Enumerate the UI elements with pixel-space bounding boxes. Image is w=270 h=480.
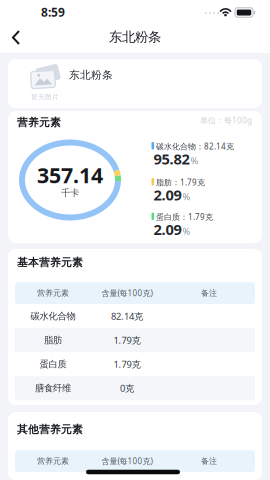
staticText: 备注 xyxy=(201,288,217,298)
staticText: % xyxy=(182,225,190,237)
staticText: 脂肪：1.79克 xyxy=(156,177,205,188)
staticText: 暂无图片 xyxy=(31,93,59,101)
staticText: 蛋白质：1.79克 xyxy=(156,211,213,222)
staticText: 营养元素 xyxy=(37,456,69,466)
staticText: 备注 xyxy=(201,456,217,466)
staticText: 营养元素 xyxy=(17,116,61,129)
staticText: 2.09 xyxy=(153,185,181,204)
staticText: 8:59 xyxy=(41,4,65,20)
staticText: 东北粉条 xyxy=(109,29,161,45)
staticText: 营养元素 xyxy=(37,288,69,298)
staticText: 碳水化合物：82.14克 xyxy=(156,141,234,152)
staticText: 单位：每100g xyxy=(200,115,252,126)
staticText: % xyxy=(182,190,190,203)
staticText: 含量(每100克) xyxy=(101,288,152,298)
staticText: % xyxy=(190,154,198,167)
staticText: 蛋白质 xyxy=(39,358,66,370)
staticText: 脂肪 xyxy=(44,334,62,346)
button[interactable]: 暂无图片 xyxy=(8,59,262,108)
staticText: 东北粉条 xyxy=(69,68,113,82)
staticText: 1.79克 xyxy=(113,358,140,370)
button[interactable] xyxy=(9,28,23,47)
staticText: 2.09 xyxy=(153,219,181,239)
staticText: 357.14 xyxy=(37,161,103,189)
staticText: 基本营养元素 xyxy=(17,256,83,269)
staticText: 膳食纤维 xyxy=(35,382,71,394)
staticText: 82.14克 xyxy=(111,310,143,322)
staticText: 碳水化合物 xyxy=(30,310,75,322)
staticText: 0克 xyxy=(120,382,134,394)
staticText: 含量(每100克) xyxy=(101,456,152,466)
staticText: 千卡 xyxy=(61,187,79,199)
staticText: 其他营养元素 xyxy=(17,423,83,436)
staticText: 95.82 xyxy=(153,149,189,168)
staticText: 1.79克 xyxy=(113,334,140,346)
